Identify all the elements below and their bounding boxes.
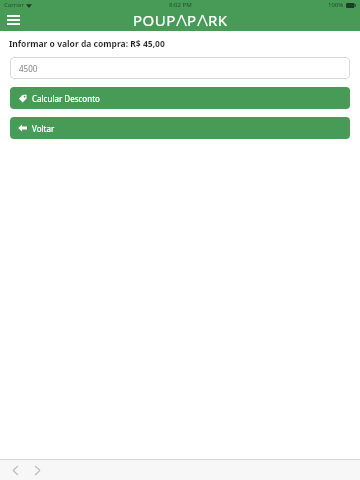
staticText: RK xyxy=(208,10,228,30)
staticText: 4500 xyxy=(19,63,38,74)
staticText: 8:02 PM xyxy=(169,1,192,9)
staticText: 100% xyxy=(328,1,344,9)
button[interactable]: Forward xyxy=(29,462,45,478)
staticText: Informar o valor da compra: R$ 45,00 xyxy=(9,38,165,50)
button[interactable]: Open menu xyxy=(0,8,26,31)
staticText: POUP xyxy=(133,10,176,30)
button[interactable]: 4500 xyxy=(10,57,350,79)
staticText: Calcular Desconto xyxy=(32,93,100,104)
staticText: Carrier xyxy=(4,1,24,9)
staticText: Voltar xyxy=(32,123,55,134)
button[interactable]: Calcular Desconto xyxy=(10,87,350,109)
button[interactable]: Back xyxy=(7,462,23,478)
button[interactable]: Voltar xyxy=(10,117,350,139)
staticText: P xyxy=(187,10,197,30)
